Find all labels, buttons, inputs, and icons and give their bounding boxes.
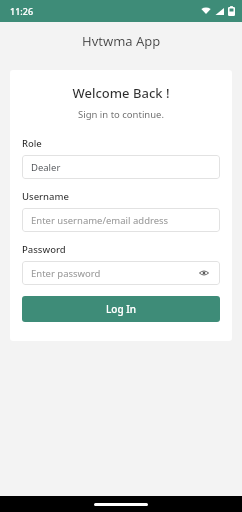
staticText: Hvtwma App (82, 32, 161, 50)
staticText: Role (22, 137, 42, 150)
staticText: Username (22, 190, 69, 203)
staticText: Enter password (31, 267, 101, 280)
button[interactable]: Enter password (22, 261, 220, 285)
staticText: Welcome Back ! (22, 84, 220, 102)
button[interactable]: Dealer (22, 155, 220, 179)
staticText: Log In (106, 302, 137, 316)
staticText: Password (22, 243, 66, 256)
staticText: 11:26 (10, 5, 34, 17)
button[interactable]: Enter username/email address (22, 208, 220, 232)
staticText: Enter username/email address (31, 214, 169, 227)
staticText: Dealer (31, 161, 61, 174)
button[interactable]: Log In (22, 296, 220, 322)
button[interactable]: Show password (197, 266, 211, 280)
staticText: Sign in to continue. (22, 108, 220, 121)
